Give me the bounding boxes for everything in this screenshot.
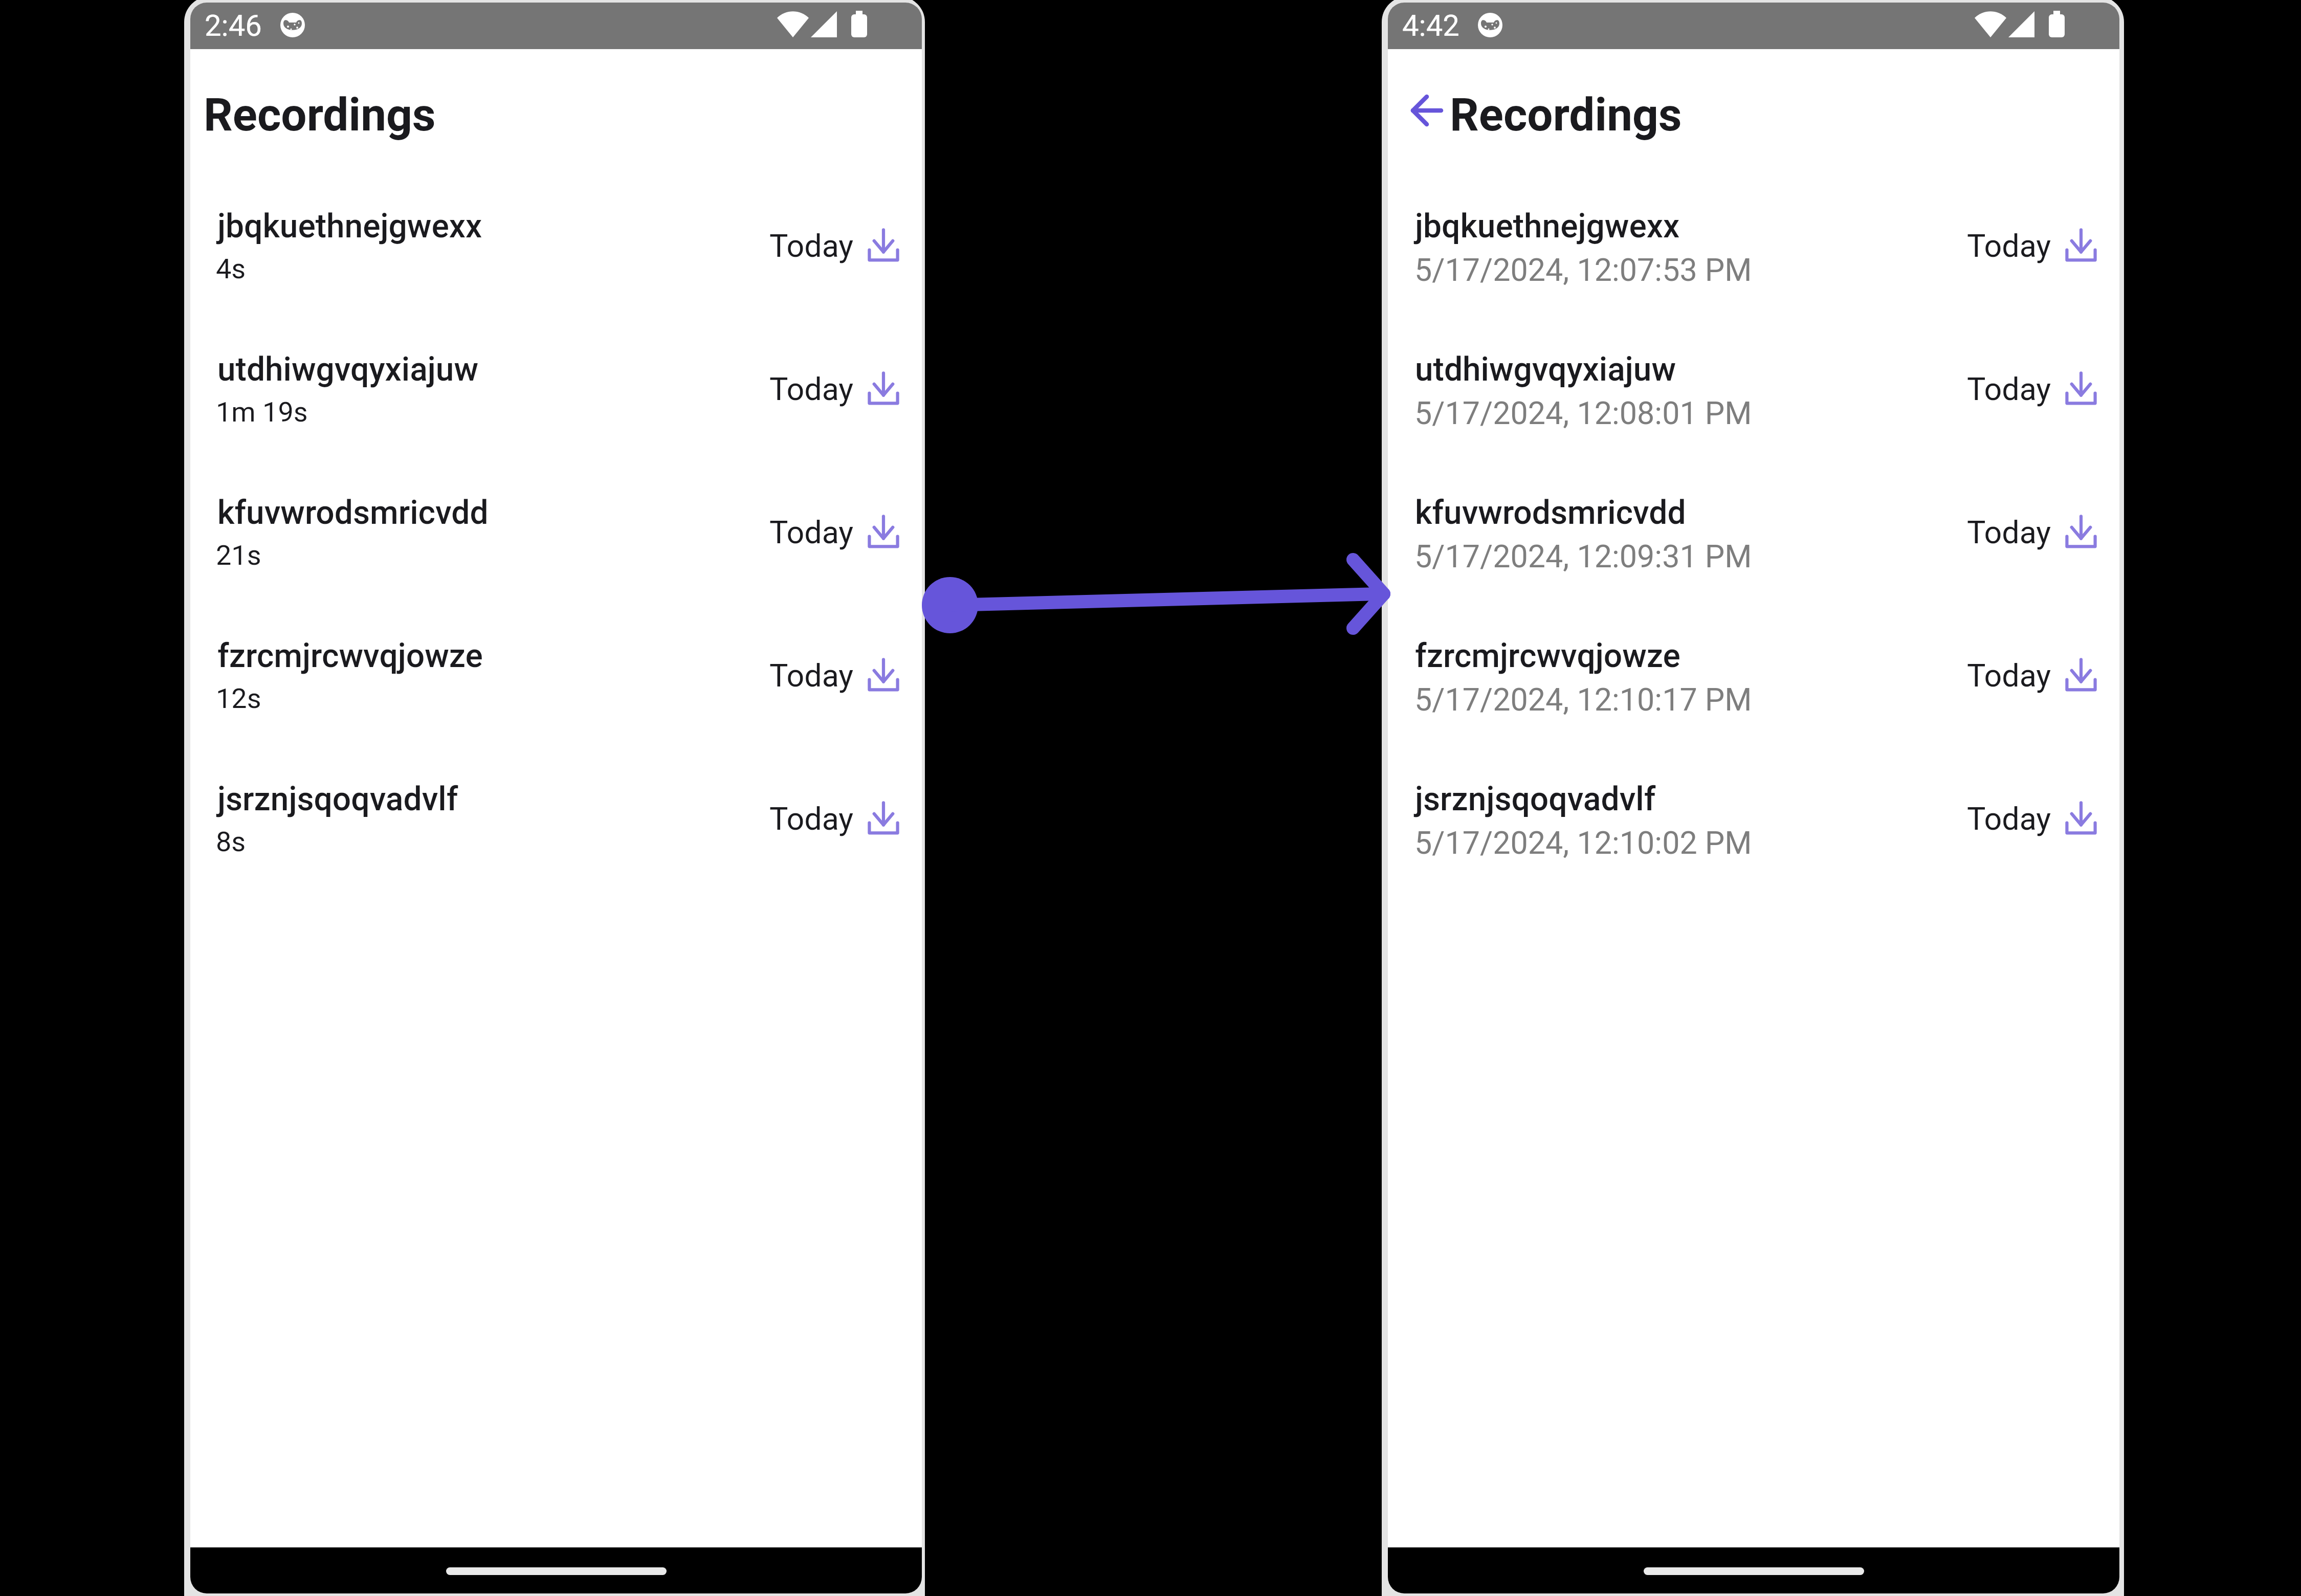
staticText: Recordings: [204, 88, 436, 141]
staticText: kfuvwrodsmricvdd: [217, 494, 489, 532]
button[interactable]: Download: [868, 515, 899, 548]
button[interactable]: jbqkuethnejgwexx: [190, 178, 922, 321]
staticText: Today: [769, 801, 854, 837]
staticText: 2:46: [205, 8, 262, 43]
button[interactable]: jsrznjsqoqvadvlf: [190, 750, 922, 894]
button[interactable]: Back: [1405, 88, 1449, 132]
button[interactable]: jsrznjsqoqvadvlf: [1388, 750, 2119, 894]
staticText: Today: [1967, 371, 2051, 407]
staticText: 4:42: [1402, 8, 1459, 43]
button[interactable]: kfuvwrodsmricvdd: [1388, 464, 2119, 607]
staticText: Today: [769, 228, 854, 264]
staticText: jsrznjsqoqvadvlf: [1415, 780, 1656, 818]
staticText: 4s: [216, 253, 246, 285]
staticText: Today: [769, 514, 854, 550]
button[interactable]: Download: [2065, 658, 2097, 692]
staticText: kfuvwrodsmricvdd: [1415, 494, 1686, 532]
button[interactable]: fzrcmjrcwvqjowze: [1388, 607, 2119, 750]
button[interactable]: fzrcmjrcwvqjowze: [190, 607, 922, 750]
staticText: 12s: [216, 682, 261, 715]
staticText: 5/17/2024, 12:07:53 PM: [1414, 252, 1752, 288]
button[interactable]: jbqkuethnejgwexx: [1388, 178, 2119, 321]
staticText: Today: [1967, 228, 2051, 264]
staticText: 8s: [216, 826, 246, 858]
staticText: 5/17/2024, 12:10:02 PM: [1414, 825, 1752, 861]
staticText: jbqkuethnejgwexx: [1415, 207, 1680, 246]
staticText: Today: [1967, 514, 2051, 550]
button[interactable]: Download: [868, 801, 899, 835]
staticText: 1m 19s: [216, 396, 308, 428]
staticText: fzrcmjrcwvqjowze: [217, 637, 483, 675]
staticText: Today: [769, 371, 854, 407]
button[interactable]: Download: [868, 228, 899, 262]
staticText: Today: [769, 657, 854, 694]
button[interactable]: Download: [868, 658, 899, 692]
button[interactable]: utdhiwgvqyxiajuw: [1388, 321, 2119, 464]
button[interactable]: Download: [2065, 515, 2097, 548]
button[interactable]: utdhiwgvqyxiajuw: [190, 321, 922, 464]
staticText: 5/17/2024, 12:10:17 PM: [1414, 681, 1752, 718]
staticText: Recordings: [1450, 88, 1682, 141]
staticText: Today: [1967, 657, 2051, 694]
staticText: fzrcmjrcwvqjowze: [1415, 637, 1680, 675]
button[interactable]: Download: [2065, 228, 2097, 262]
button[interactable]: Download: [2065, 801, 2097, 835]
button[interactable]: Download: [868, 371, 899, 405]
staticText: 5/17/2024, 12:09:31 PM: [1414, 538, 1752, 574]
staticText: Today: [1967, 801, 2051, 837]
button[interactable]: kfuvwrodsmricvdd: [190, 464, 922, 607]
staticText: 21s: [216, 539, 261, 571]
staticText: jsrznjsqoqvadvlf: [217, 780, 458, 818]
button[interactable]: Download: [2065, 371, 2097, 405]
staticText: utdhiwgvqyxiajuw: [217, 350, 478, 389]
staticText: utdhiwgvqyxiajuw: [1415, 350, 1676, 389]
staticText: 5/17/2024, 12:08:01 PM: [1414, 395, 1752, 431]
staticText: jbqkuethnejgwexx: [217, 207, 482, 246]
